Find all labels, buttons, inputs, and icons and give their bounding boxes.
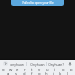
staticText: f [31,71,33,75]
button[interactable]: a [4,71,12,75]
button[interactable]: Failed to open your file [11,0,64,6]
staticText: w [9,67,13,71]
staticText: Onyhuan [30,62,45,66]
staticText: a [7,71,10,75]
button[interactable]: l [64,71,71,75]
button[interactable]: d [20,71,28,75]
staticText: s [15,71,18,75]
staticText: i [54,67,56,71]
button[interactable]: o [59,67,67,71]
staticText: r [24,67,26,71]
button[interactable]: w [7,67,14,71]
button[interactable]: onyhuan [10,60,24,67]
button[interactable]: h [43,71,50,75]
staticText: p [70,67,73,71]
button[interactable]: f [28,71,36,75]
staticText: q [2,67,5,71]
staticText: y [38,67,41,71]
staticText: d [23,71,26,75]
staticText: onyhuan [10,62,24,66]
staticText: e [16,67,19,71]
staticText: Failed to open your file [22,1,54,5]
button[interactable]: s [12,71,20,75]
staticText: j [53,71,55,75]
button[interactable]: q [0,67,7,71]
button[interactable]: r [21,67,28,71]
staticText: g [38,71,41,75]
button[interactable]: i [51,67,59,71]
staticText: k [59,71,62,75]
button[interactable]: Expand toolbar [0,60,10,67]
staticText: l [67,71,69,75]
button[interactable]: y [35,67,43,71]
staticText: t [31,67,33,71]
button[interactable]: Onyhuan? [47,60,65,67]
staticText: Onyhuan? [48,62,64,66]
staticText: o [62,67,65,71]
button[interactable]: j [50,71,57,75]
staticText: u [46,67,49,71]
button[interactable]: Onyhuan [28,60,46,67]
button[interactable]: e [14,67,21,71]
button[interactable]: k [57,71,64,75]
button[interactable]: g [36,71,43,75]
button[interactable]: p [67,67,75,71]
staticText: h [45,71,48,75]
button[interactable]: u [43,67,51,71]
button[interactable]: t [28,67,35,71]
button[interactable]: Voice input [65,60,74,67]
